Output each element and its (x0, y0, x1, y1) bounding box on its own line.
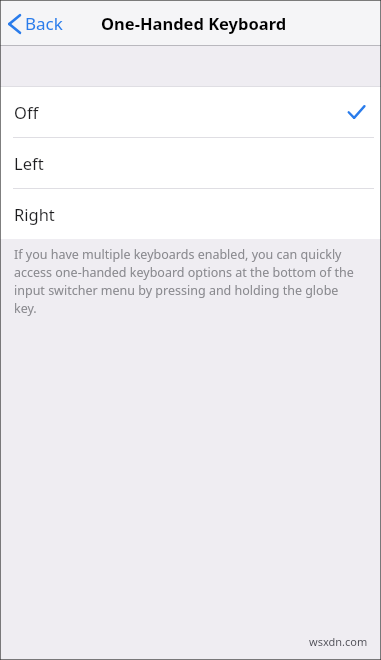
staticText: One-Handed Keyboard (101, 12, 287, 34)
staticText: wsxdn.com (309, 634, 368, 649)
staticText: Back (25, 12, 63, 35)
staticText: Left (14, 152, 44, 174)
button[interactable]: Off (0, 87, 381, 137)
button[interactable]: Right (0, 189, 381, 239)
staticText: Right (14, 203, 55, 225)
staticText: Off (14, 101, 39, 123)
button[interactable]: Left (0, 138, 381, 188)
staticText: If you have multiple keyboards enabled, … (14, 246, 355, 317)
other: Selected (348, 105, 365, 119)
button[interactable]: Back (8, 12, 63, 35)
